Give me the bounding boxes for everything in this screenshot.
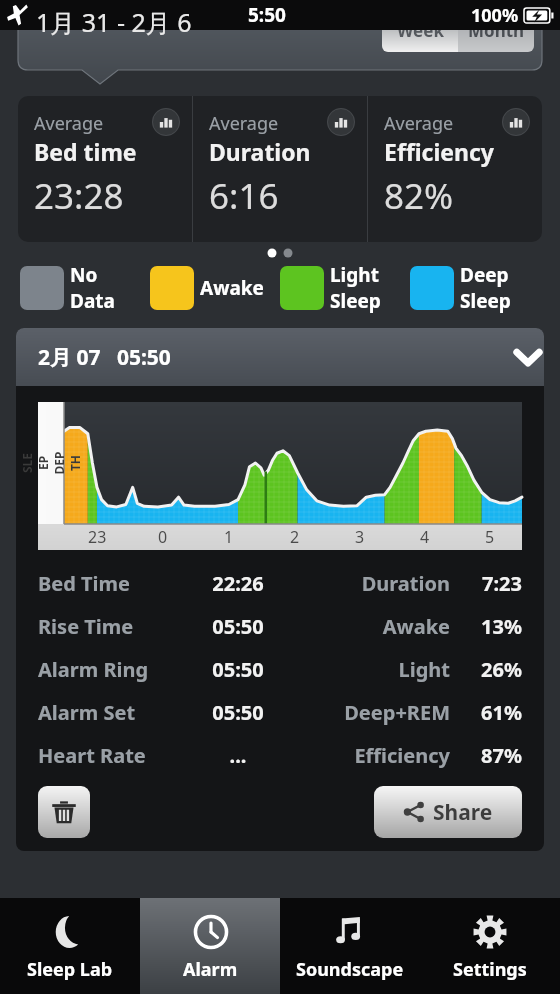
staticText: Deep: [460, 262, 509, 288]
button[interactable]: Settings: [420, 898, 560, 994]
staticText: Heart Rate: [38, 742, 186, 769]
staticText: Alarm Set: [38, 699, 186, 726]
button[interactable]: Average: [368, 96, 542, 242]
staticText: 22:26: [186, 570, 290, 597]
staticText: Alarm: [183, 957, 238, 982]
button[interactable]: Alarm: [140, 898, 280, 994]
staticText: 5: [485, 526, 495, 548]
staticText: 3: [355, 526, 365, 548]
staticText: Share: [433, 798, 493, 827]
staticText: 0: [158, 526, 168, 548]
staticText: ...: [186, 742, 290, 769]
staticText: 1: [224, 526, 234, 548]
staticText: SLEEP DEPTH: [19, 450, 83, 476]
staticText: Duration: [209, 136, 311, 167]
button[interactable]: Sleep Lab: [0, 898, 140, 994]
other: Collapse: [514, 342, 542, 372]
staticText: Light: [290, 656, 450, 683]
staticText: Data: [70, 288, 115, 314]
button[interactable]: Soundscape: [280, 898, 420, 994]
staticText: 100%: [471, 3, 519, 28]
staticText: 82%: [384, 172, 454, 220]
staticText: Efficiency: [384, 136, 494, 167]
button[interactable]: Delete: [38, 786, 90, 838]
button[interactable]: Average: [193, 96, 367, 242]
staticText: 1月 31 - 2月 6: [36, 5, 192, 39]
staticText: 13%: [462, 613, 522, 640]
staticText: 87%: [462, 742, 522, 769]
button[interactable]: Light: [280, 262, 410, 314]
staticText: 61%: [462, 699, 522, 726]
staticText: Efficiency: [290, 742, 450, 769]
staticText: Soundscape: [296, 957, 404, 982]
button[interactable]: Deep: [410, 262, 540, 314]
staticText: Sleep: [460, 288, 511, 314]
staticText: Duration: [290, 570, 450, 597]
button[interactable]: Month: [458, 8, 534, 52]
staticText: 4: [420, 526, 430, 548]
button[interactable]: Week: [382, 8, 458, 52]
staticText: Sleep Lab: [27, 957, 113, 982]
staticText: No: [70, 262, 98, 288]
staticText: Month: [468, 19, 525, 42]
staticText: Bed time: [34, 136, 137, 167]
button[interactable]: Awake: [150, 266, 280, 310]
button[interactable]: Average: [18, 96, 192, 242]
staticText: Average: [209, 111, 279, 136]
staticText: Light: [330, 262, 379, 288]
staticText: 2月 07 05:50: [38, 343, 171, 372]
button[interactable]: No: [20, 262, 150, 314]
staticText: Average: [34, 111, 104, 136]
staticText: Settings: [453, 957, 527, 982]
staticText: Sleep: [330, 288, 381, 314]
staticText: Week: [397, 19, 444, 42]
staticText: 05:50: [186, 699, 290, 726]
staticText: Deep+REM: [290, 699, 450, 726]
staticText: 05:50: [186, 613, 290, 640]
staticText: Awake: [290, 613, 450, 640]
staticText: 05:50: [186, 656, 290, 683]
button[interactable]: 2月 07 05:50: [16, 328, 544, 386]
staticText: Average: [384, 111, 454, 136]
staticText: 5:50: [248, 2, 286, 28]
staticText: Alarm Ring: [38, 656, 186, 683]
staticText: 23:28: [34, 172, 124, 220]
staticText: 6:16: [209, 172, 279, 220]
staticText: Awake: [200, 275, 264, 301]
staticText: 7:23: [462, 570, 522, 597]
staticText: Rise Time: [38, 613, 186, 640]
staticText: 2: [290, 526, 300, 548]
staticText: 23: [88, 526, 107, 548]
staticText: Bed Time: [38, 570, 186, 597]
staticText: 26%: [462, 656, 522, 683]
button[interactable]: Share: [374, 786, 522, 838]
